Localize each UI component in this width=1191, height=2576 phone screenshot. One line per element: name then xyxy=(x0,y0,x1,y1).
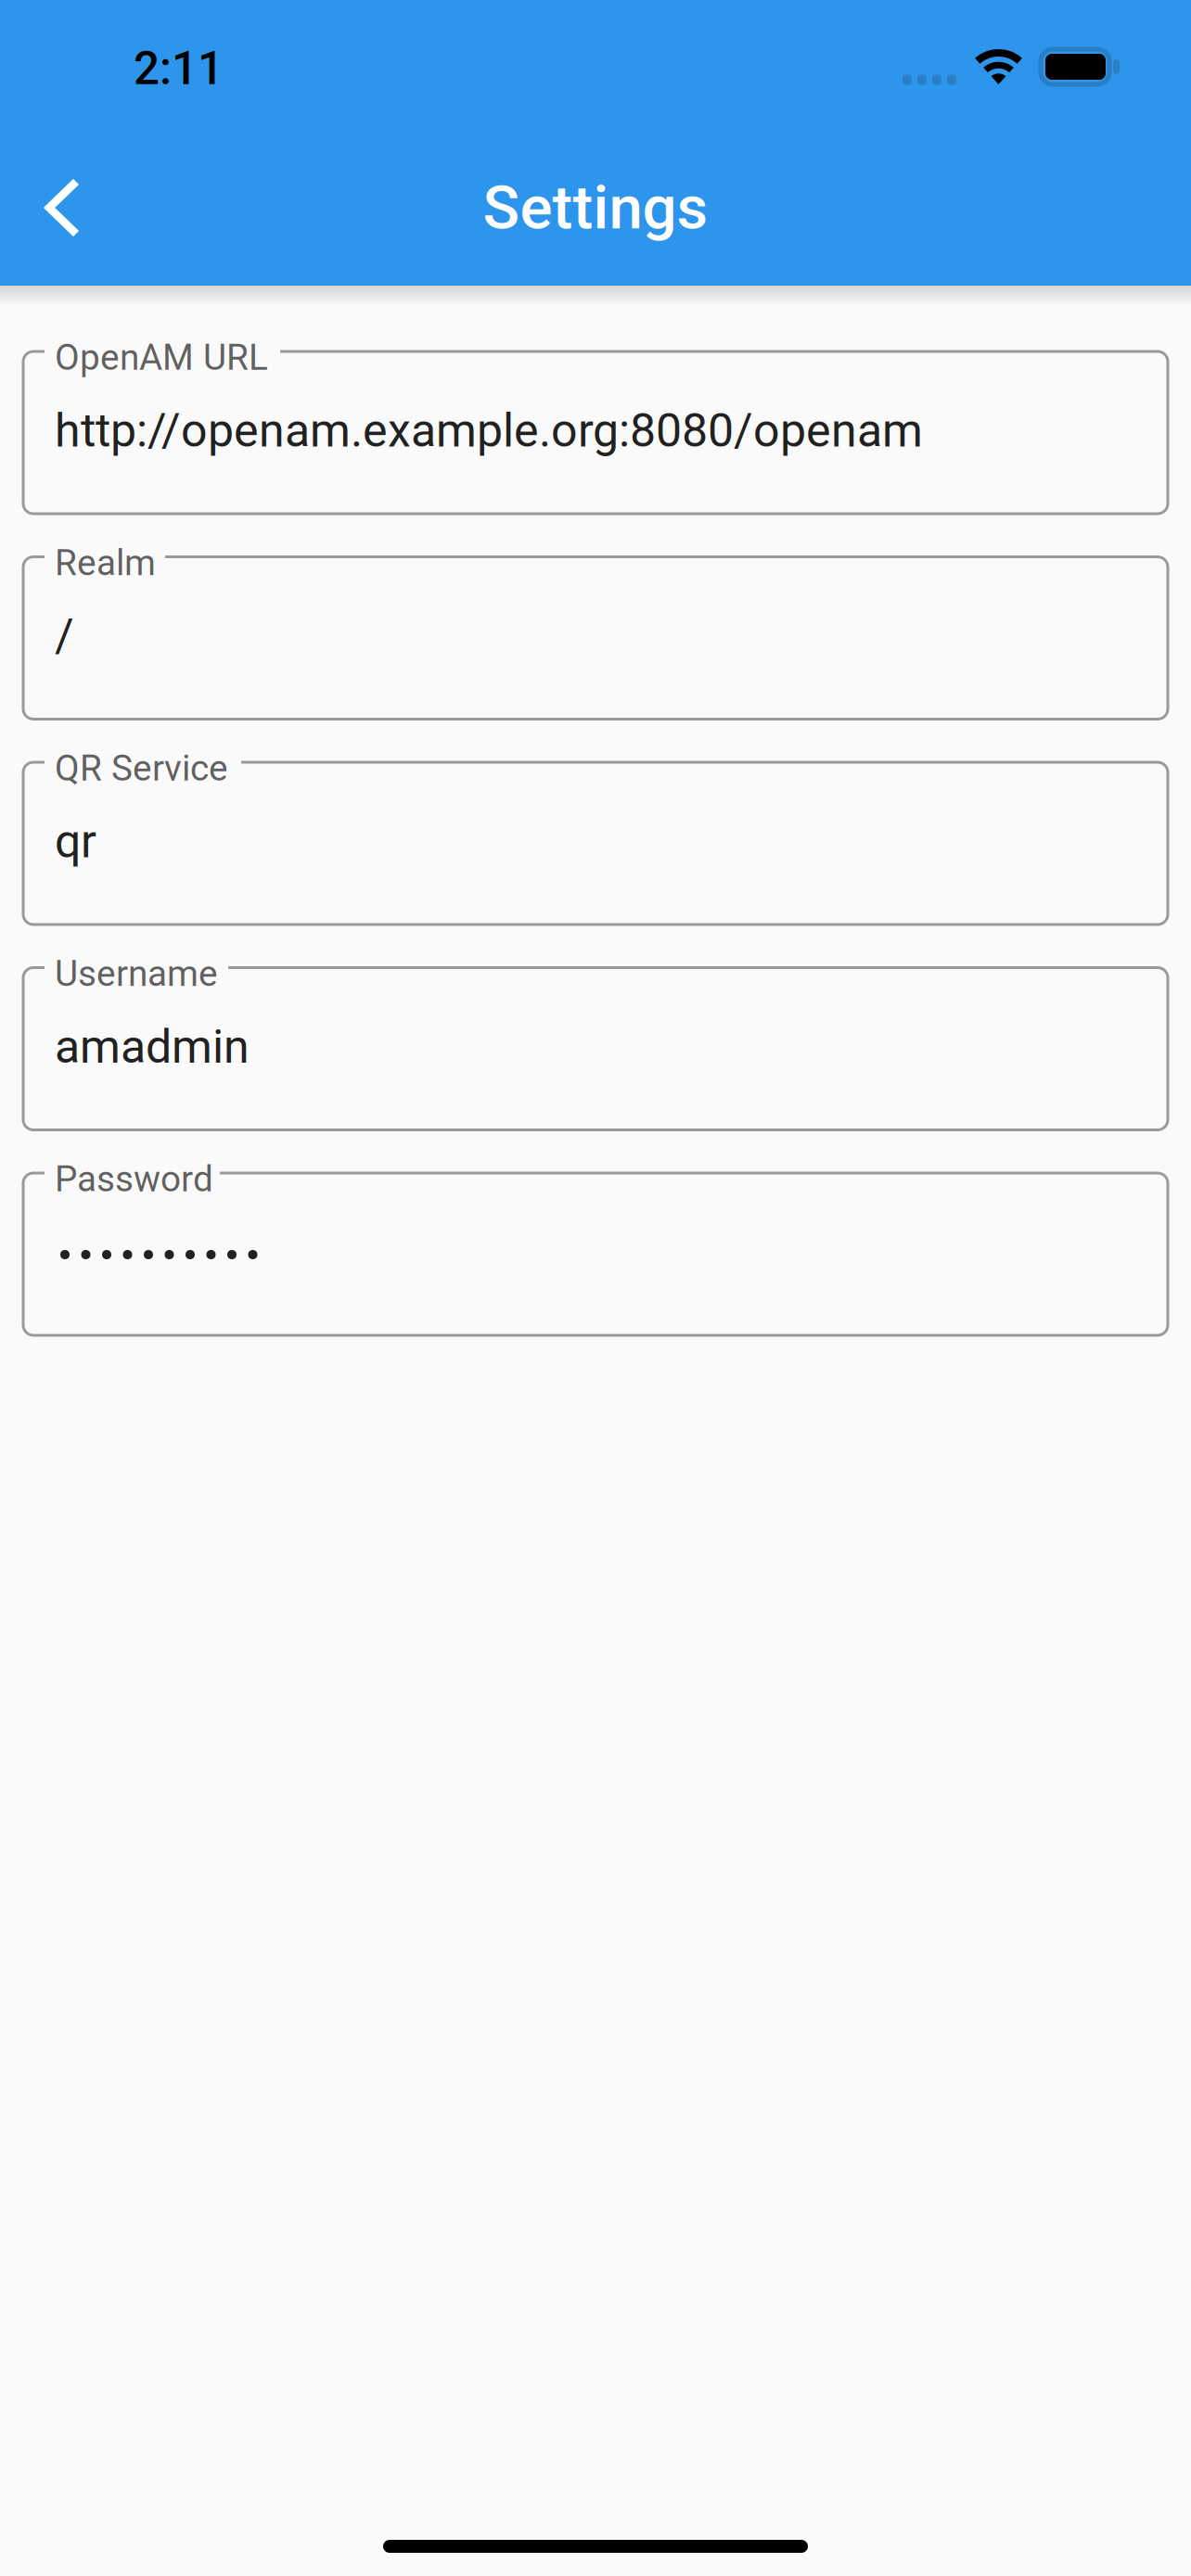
staticText: OpenAM URL xyxy=(55,337,268,379)
staticText: Settings xyxy=(483,172,708,243)
button[interactable]: QR Service xyxy=(23,762,1168,925)
staticText: http://openam.example.org:8080/openam xyxy=(55,403,923,458)
staticText: amadmin xyxy=(55,1020,250,1074)
button[interactable]: Realm xyxy=(23,557,1168,719)
button[interactable]: Back xyxy=(0,135,118,280)
staticText: 2:11 xyxy=(134,42,224,95)
staticText: qr xyxy=(55,814,96,868)
staticText: / xyxy=(55,609,74,663)
button[interactable]: Password xyxy=(23,1173,1168,1335)
button[interactable]: Username xyxy=(23,968,1168,1130)
staticText: Username xyxy=(55,953,218,995)
staticText: QR Service xyxy=(55,747,228,789)
staticText: Password xyxy=(55,1158,213,1200)
button[interactable]: OpenAM URL xyxy=(23,351,1168,514)
staticText: Realm xyxy=(55,542,156,584)
